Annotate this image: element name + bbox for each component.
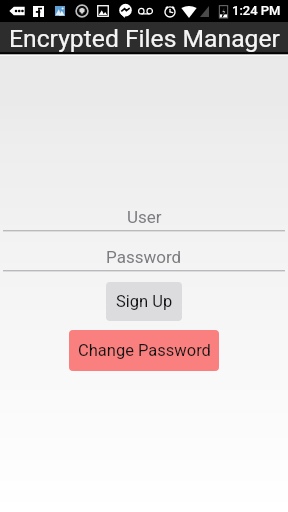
staticText: 1:24 PM bbox=[232, 3, 281, 18]
staticText: Sign Up bbox=[116, 292, 173, 311]
staticText: Password bbox=[106, 247, 182, 267]
button[interactable]: User bbox=[0, 204, 288, 230]
staticText: User bbox=[127, 207, 162, 227]
button[interactable]: Password bbox=[0, 244, 288, 270]
button[interactable]: Change Password bbox=[69, 330, 219, 371]
button[interactable]: Sign Up bbox=[106, 282, 182, 321]
staticText: Change Password bbox=[78, 341, 211, 360]
staticText: Encrypted Files Manager bbox=[9, 24, 280, 53]
